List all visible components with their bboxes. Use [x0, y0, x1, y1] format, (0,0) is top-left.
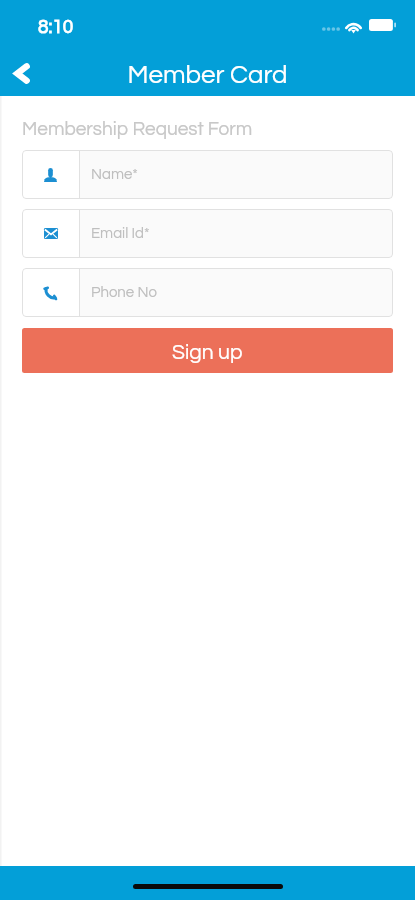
staticText: Email Id*	[91, 226, 150, 241]
button[interactable]: Back	[0, 50, 43, 97]
button[interactable]: Email Id*	[22, 209, 393, 258]
staticText: 8:10	[38, 17, 74, 37]
staticText: Membership Request Form	[22, 119, 253, 139]
button[interactable]: Name*	[22, 150, 393, 199]
staticText: Phone No	[91, 285, 157, 300]
staticText: Sign up	[172, 342, 243, 364]
button[interactable]: Sign up	[22, 328, 393, 373]
staticText: Name*	[91, 167, 138, 182]
staticText: Member Card	[0, 62, 415, 89]
button[interactable]: Phone No	[22, 268, 393, 317]
